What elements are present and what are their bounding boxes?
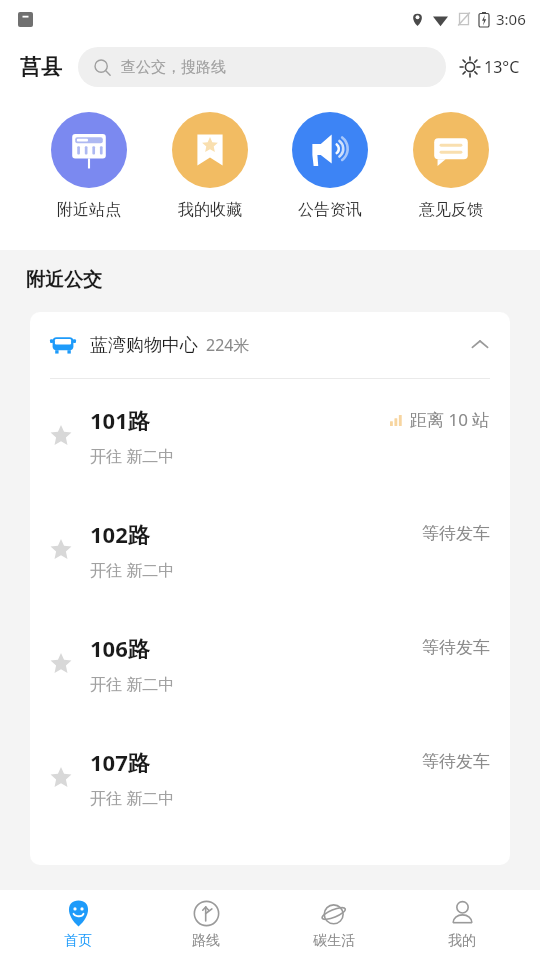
staticText: 碳生活 [313,932,355,950]
staticText: 开往 新二中 [90,787,175,809]
staticText: 附近站点 [57,200,121,220]
button[interactable]: 碳生活 [284,894,384,956]
staticText: 107路 [90,747,150,777]
button[interactable]: Weather [460,56,520,78]
button[interactable]: 公告资讯 [286,108,374,224]
button[interactable]: 我的收藏 [166,108,254,224]
button[interactable]: 路线 [156,894,256,956]
button[interactable]: Favorite [30,721,510,835]
staticText: 3:06 [496,9,526,29]
button[interactable]: 首页 [28,894,128,956]
button[interactable]: 附近站点 [45,108,133,224]
button[interactable]: Favorite [30,607,510,721]
staticText: 蓝湾购物中心 [90,334,198,357]
staticText: 公告资讯 [298,200,362,220]
other: Favorite [50,653,72,675]
staticText: 我的 [448,932,476,950]
staticText: 13°C [484,56,520,78]
staticText: 等待发车 [422,523,490,544]
staticText: 查公交，搜路线 [121,58,226,77]
staticText: 开往 新二中 [90,559,175,581]
staticText: 等待发车 [422,637,490,658]
staticText: 距离 10 站 [410,408,490,431]
button[interactable]: 我的 [412,894,512,956]
staticText: 路线 [192,932,220,950]
other: Favorite [50,767,72,789]
staticText: 224米 [206,334,250,356]
button[interactable]: Favorite [30,493,510,607]
other: Favorite [50,425,72,447]
staticText: 102路 [90,519,150,549]
staticText: 开往 新二中 [90,673,175,695]
button[interactable]: 查公交，搜路线 [78,47,446,87]
button[interactable]: 蓝湾购物中心 [30,312,510,378]
button[interactable]: Favorite [30,379,510,493]
staticText: 等待发车 [422,751,490,772]
other: Collapse [470,335,490,355]
staticText: 意见反馈 [419,200,483,220]
staticText: 附近公交 [26,268,102,292]
staticText: 首页 [64,932,92,950]
staticText: 106路 [90,633,150,663]
staticText: 我的收藏 [178,200,242,220]
staticText: 开往 新二中 [90,445,175,467]
staticText: 莒县 [20,54,62,80]
other: Favorite [50,539,72,561]
staticText: 101路 [90,405,150,435]
button[interactable]: 意见反馈 [407,108,495,224]
